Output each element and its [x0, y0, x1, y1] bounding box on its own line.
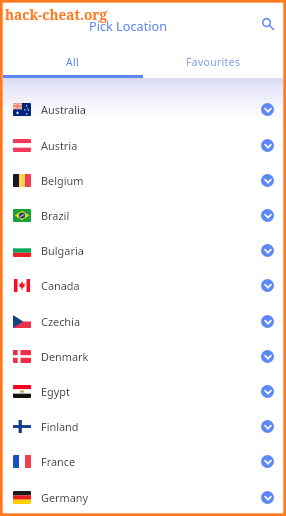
button[interactable]: Austria: [3, 128, 283, 163]
staticText: Australia: [41, 102, 86, 117]
staticText: All: [66, 55, 80, 69]
staticText: Bulgaria: [41, 243, 84, 258]
button[interactable]: Search: [255, 11, 281, 37]
button[interactable]: Egypt: [3, 374, 283, 409]
staticText: France: [41, 454, 76, 469]
staticText: hack-cheat.org: [5, 5, 107, 24]
button[interactable]: Belgium: [3, 163, 283, 198]
staticText: Favourites: [186, 55, 241, 69]
staticText: Canada: [41, 278, 80, 293]
staticText: Egypt: [41, 384, 70, 399]
staticText: Czechia: [41, 314, 81, 329]
button[interactable]: Canada: [3, 268, 283, 303]
staticText: Germany: [41, 490, 89, 505]
staticText: Belgium: [41, 173, 84, 188]
button[interactable]: Czechia: [3, 304, 283, 339]
button[interactable]: Australia: [3, 92, 283, 127]
button[interactable]: Denmark: [3, 339, 283, 374]
button[interactable]: Bulgaria: [3, 233, 283, 268]
button[interactable]: All: [3, 48, 143, 78]
staticText: Austria: [41, 138, 78, 153]
staticText: Pick Location: [89, 17, 168, 34]
staticText: Finland: [41, 419, 79, 434]
button[interactable]: Favourites: [143, 48, 283, 78]
button[interactable]: France: [3, 444, 283, 479]
button[interactable]: Germany: [3, 480, 283, 515]
staticText: Denmark: [41, 349, 89, 364]
staticText: Brazil: [41, 208, 70, 223]
button[interactable]: Brazil: [3, 198, 283, 233]
button[interactable]: Finland: [3, 409, 283, 444]
